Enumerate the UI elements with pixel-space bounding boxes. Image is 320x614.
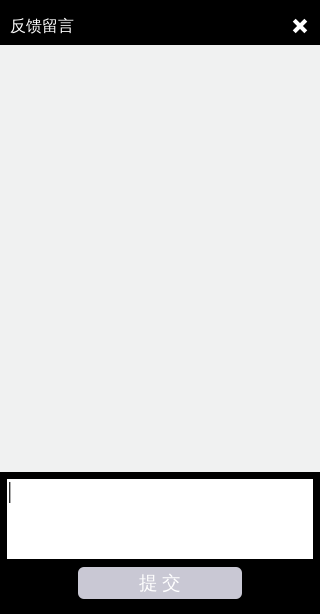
button[interactable]: Message	[7, 479, 313, 559]
staticText: 提 交	[139, 571, 181, 594]
button[interactable]: 提 交	[78, 567, 242, 599]
button[interactable]: Close	[282, 8, 318, 44]
staticText: 反馈留言	[10, 16, 74, 36]
